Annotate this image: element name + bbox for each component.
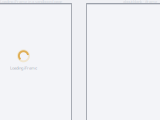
staticText: about:blank · iframe: [123, 0, 157, 4]
staticText: Loading iFrame in a sandboxed page: [0, 0, 62, 4]
button[interactable]: Loading iFrame: [0, 3, 71, 120]
staticText: Loading iFrame: [10, 65, 37, 71]
button[interactable]: Empty iFrame: [87, 3, 160, 120]
